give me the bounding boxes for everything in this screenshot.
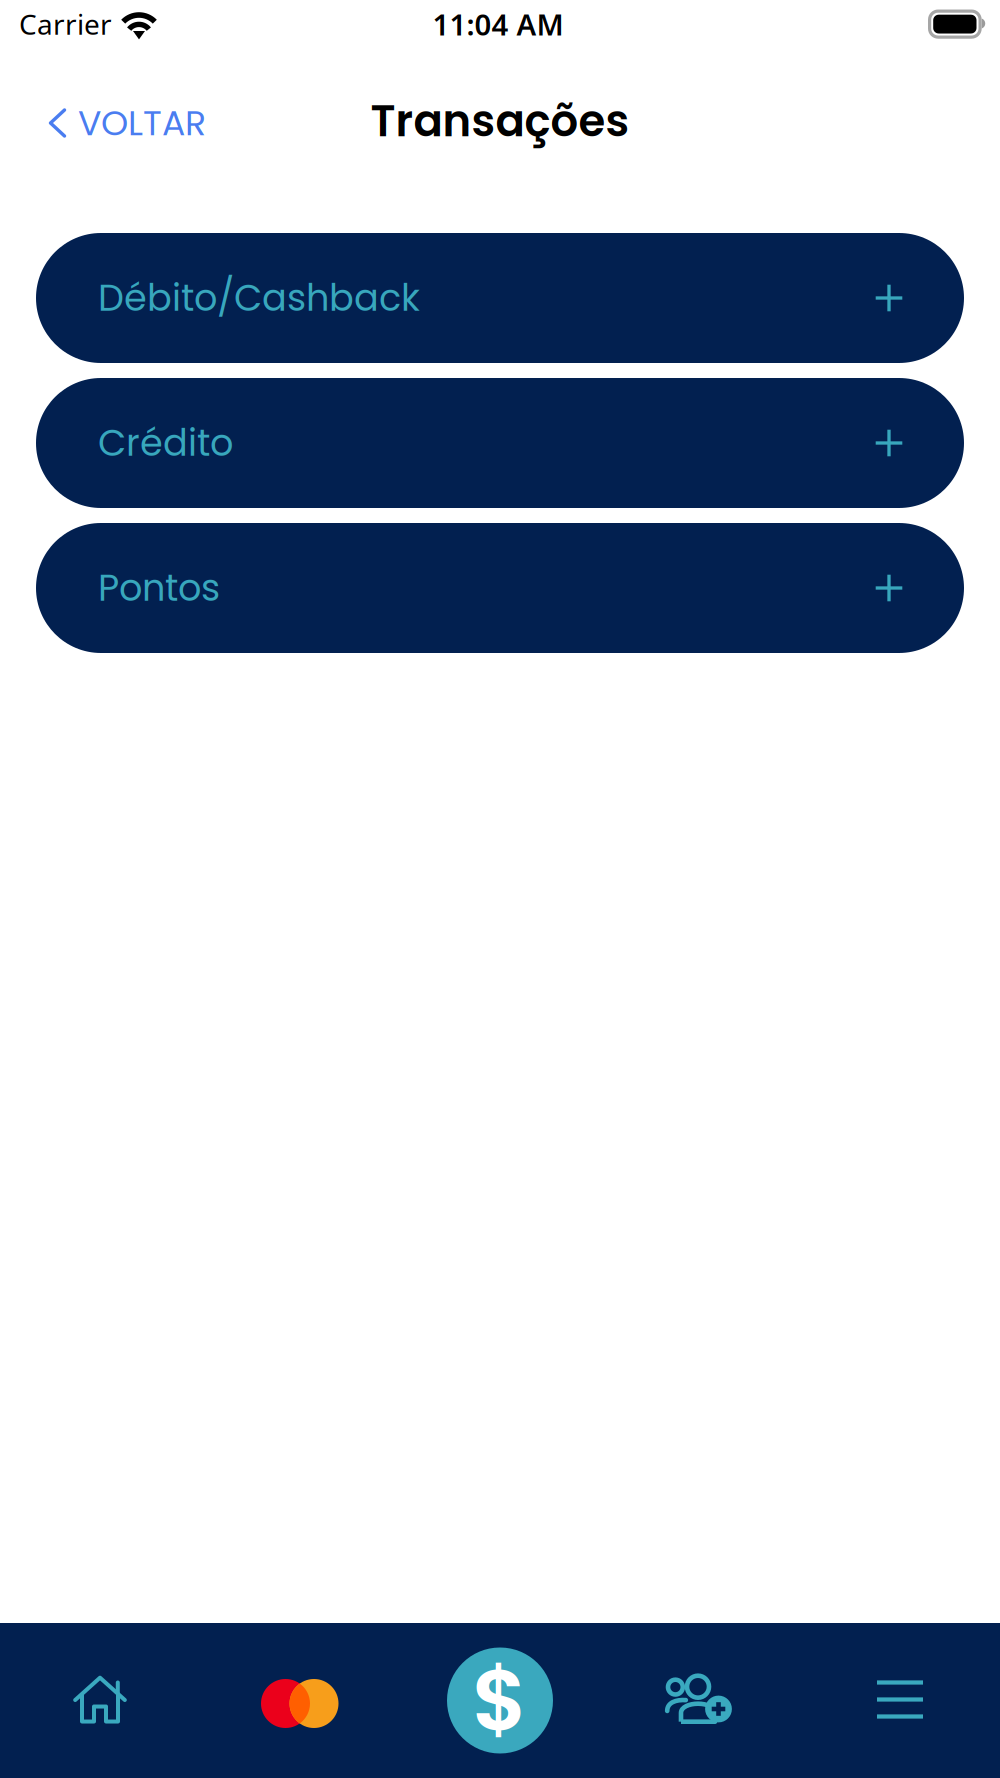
staticText: Crédito <box>98 417 233 469</box>
button[interactable]: Invite friends <box>600 1623 800 1778</box>
staticText: VOLTAR <box>78 99 206 147</box>
staticText: Pontos <box>98 562 220 614</box>
button[interactable]: Crédito <box>36 378 964 508</box>
button[interactable]: Menu <box>800 1623 1000 1778</box>
staticText: 11:04 AM <box>432 4 563 43</box>
button[interactable]: Transactions <box>400 1623 600 1778</box>
button[interactable]: Débito/Cashback <box>36 233 964 363</box>
staticText: $ <box>472 1641 528 1760</box>
button[interactable]: Pontos <box>36 523 964 653</box>
button[interactable]: Home <box>0 1623 200 1778</box>
button[interactable]: VOLTAR <box>0 83 232 163</box>
staticText: Transações <box>370 91 629 151</box>
button[interactable]: Cards <box>200 1623 400 1778</box>
staticText: Débito/Cashback <box>98 272 420 324</box>
staticText: Carrier <box>19 5 112 43</box>
